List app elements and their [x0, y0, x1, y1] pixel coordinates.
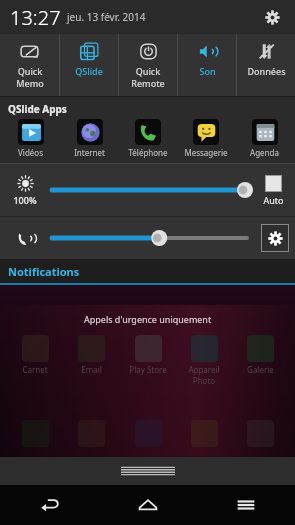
staticText: Appareil Photo: [188, 364, 220, 386]
staticText: Vidéos: [18, 147, 43, 158]
staticText: Son: [199, 65, 216, 77]
button[interactable]: Back: [0, 485, 99, 525]
button[interactable]: Son: [178, 34, 236, 96]
button[interactable]: Internet: [62, 119, 117, 158]
staticText: Galerie: [247, 364, 274, 375]
button[interactable]: Home: [99, 485, 197, 525]
button[interactable]: Settings: [257, 2, 287, 32]
staticText: Appels d'urgence uniquement: [84, 313, 212, 325]
button[interactable]: Menu: [197, 485, 295, 525]
button[interactable]: Vidéos: [3, 119, 58, 158]
staticText: Auto: [263, 194, 284, 206]
button[interactable]: Auto: [257, 175, 289, 206]
button[interactable]: Données: [237, 34, 295, 96]
staticText: Quick Remote: [131, 65, 165, 89]
staticText: 13:27: [10, 4, 61, 31]
staticText: Agenda: [250, 147, 279, 158]
staticText: Email: [81, 364, 102, 375]
button[interactable]: Agenda: [237, 119, 292, 158]
staticText: 100%: [13, 194, 37, 206]
staticText: Internet: [74, 147, 105, 158]
staticText: QSlide Apps: [8, 102, 67, 116]
button[interactable]: QSlide: [60, 34, 118, 96]
staticText: jeu. 13 févr. 2014: [67, 10, 146, 24]
button[interactable]: [44, 175, 253, 205]
button[interactable]: [44, 224, 255, 252]
staticText: Notifications: [8, 264, 80, 279]
staticText: Play Store: [129, 364, 167, 375]
button[interactable]: Quick Remote: [119, 34, 177, 96]
staticText: Téléphone: [128, 147, 168, 158]
staticText: Messagerie: [184, 147, 228, 158]
staticText: QSlide: [75, 65, 103, 77]
button[interactable]: Téléphone: [120, 119, 175, 158]
button[interactable]: Quick Memo: [0, 34, 59, 96]
button[interactable]: Drag handle: [0, 457, 295, 485]
staticText: Quick Memo: [16, 65, 44, 89]
button[interactable]: Messagerie: [178, 119, 233, 158]
staticText: Données: [247, 65, 286, 77]
button[interactable]: Sound settings: [262, 225, 288, 251]
staticText: Carnet: [22, 364, 48, 375]
